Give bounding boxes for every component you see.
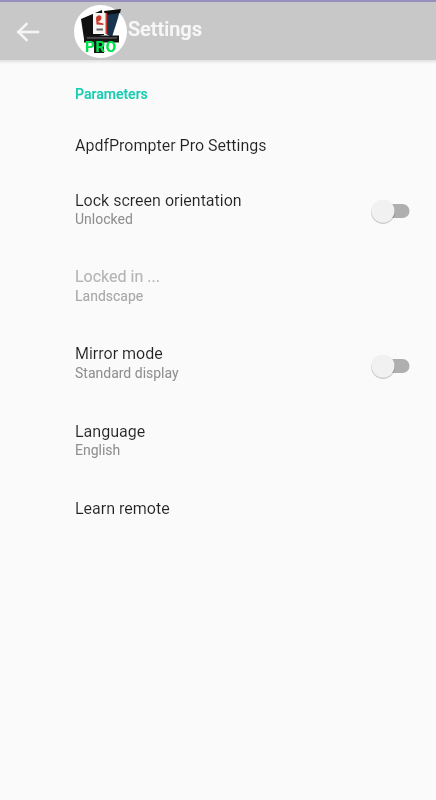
staticText: Language: [75, 422, 146, 441]
staticText: Settings: [128, 17, 203, 40]
staticText: Locked in ...: [75, 267, 160, 286]
button[interactable]: Learn remote: [0, 479, 436, 534]
button[interactable]: Lock screen orientation: [0, 172, 436, 249]
button[interactable]: Language: [0, 402, 436, 479]
button[interactable]: [368, 195, 420, 227]
button[interactable]: [368, 350, 420, 382]
staticText: Learn remote: [75, 499, 170, 518]
staticText: English: [75, 442, 121, 458]
staticText: Standard display: [75, 365, 179, 381]
button[interactable]: [6, 10, 50, 54]
staticText: Landscape: [75, 288, 144, 304]
button[interactable]: ApdfPrompter Pro Settings: [0, 118, 436, 170]
button[interactable]: Mirror mode: [0, 325, 436, 402]
staticText: ApdfPrompter Pro Settings: [75, 136, 267, 155]
staticText: Unlocked: [75, 211, 133, 227]
staticText: Parameters: [75, 86, 148, 102]
staticText: PRO: [85, 38, 118, 56]
staticText: Lock screen orientation: [75, 191, 242, 210]
staticText: Mirror mode: [75, 344, 163, 363]
